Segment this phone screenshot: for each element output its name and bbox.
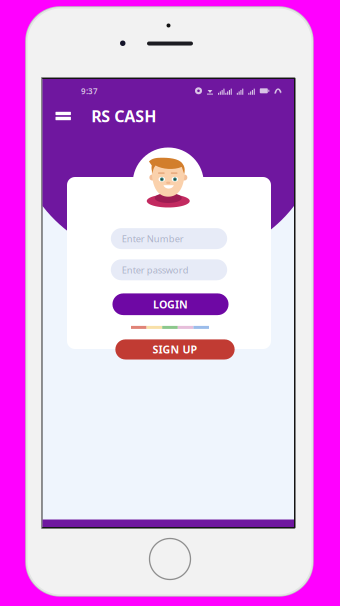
- button[interactable]: Enter password: [111, 259, 227, 280]
- button[interactable]: Menu: [50, 102, 77, 130]
- button[interactable]: SIGN UP: [115, 339, 235, 359]
- staticText: LOGIN: [153, 297, 188, 311]
- staticText: Enter Number: [122, 232, 184, 245]
- button[interactable]: Enter Number: [111, 228, 227, 249]
- staticText: RS CASH: [91, 105, 156, 127]
- button[interactable]: LOGIN: [112, 293, 229, 315]
- staticText: SIGN UP: [152, 342, 197, 357]
- staticText: 9:37: [81, 86, 98, 96]
- staticText: Enter password: [122, 264, 189, 276]
